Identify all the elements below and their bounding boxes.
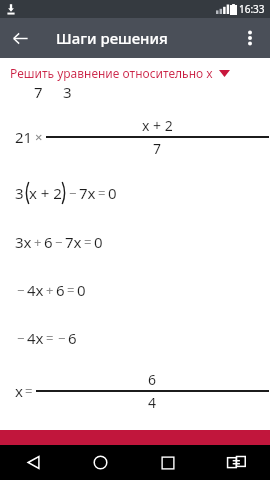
staticText: + xyxy=(46,281,54,299)
staticText: Решить уравнение относительно x xyxy=(10,65,213,81)
staticText: − xyxy=(55,233,63,251)
staticText: 3x xyxy=(15,232,32,252)
staticText: − xyxy=(69,184,77,202)
button[interactable]: Back xyxy=(0,18,40,58)
button[interactable]: Recents xyxy=(134,445,202,480)
staticText: − xyxy=(17,329,25,347)
staticText: 7 xyxy=(153,139,162,158)
staticText: 6 xyxy=(68,328,77,348)
staticText: 0 xyxy=(108,183,117,203)
staticText: 7x xyxy=(79,183,96,203)
staticText: = xyxy=(46,329,54,347)
staticText: 0 xyxy=(77,280,86,300)
staticText: Шаги решения xyxy=(56,28,168,48)
staticText: − xyxy=(58,329,66,347)
staticText: × xyxy=(35,128,43,146)
staticText: − xyxy=(17,281,25,299)
staticText: 4x xyxy=(27,328,44,348)
staticText: 0 xyxy=(94,232,103,252)
button[interactable]: Решить уравнение относительно x xyxy=(0,58,270,88)
staticText: = xyxy=(98,184,106,202)
staticText: + xyxy=(34,233,42,251)
staticText: = xyxy=(25,382,33,400)
staticText: 6 xyxy=(44,232,53,252)
staticText: = xyxy=(67,281,75,299)
button[interactable]: More options xyxy=(230,18,270,58)
staticText: 3 xyxy=(15,183,24,203)
staticText: 6 xyxy=(56,280,65,300)
staticText: x + 2 xyxy=(142,116,173,135)
staticText: 6 xyxy=(148,370,157,389)
staticText: = xyxy=(84,233,92,251)
staticText: 4 xyxy=(148,393,157,412)
staticText: 7x xyxy=(65,232,82,252)
staticText: 16:33 xyxy=(239,2,265,16)
staticText: 4x xyxy=(27,280,44,300)
staticText: 3 xyxy=(63,82,72,102)
staticText: 7 xyxy=(34,82,43,102)
staticText: x xyxy=(15,381,23,401)
button[interactable]: Home xyxy=(67,445,134,480)
button[interactable]: Back xyxy=(0,445,67,480)
staticText: 21 xyxy=(15,127,33,147)
staticText: x + 2 xyxy=(29,183,62,203)
button[interactable]: Screenshot xyxy=(202,445,270,480)
